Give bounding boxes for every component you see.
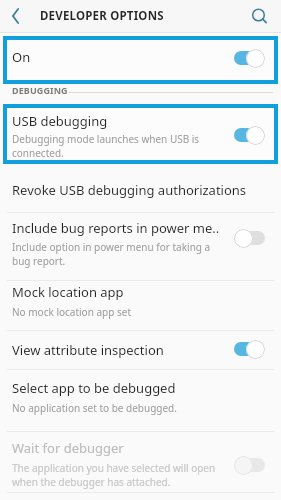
staticText: Include bug reports in power me.. — [12, 219, 220, 237]
button[interactable] — [241, 0, 281, 32]
staticText: Include option in power menu for taking … — [12, 240, 211, 254]
staticText: No mock location app set — [12, 305, 131, 319]
button[interactable]: Wait for debugger — [0, 432, 281, 492]
staticText: Wait for debugger — [12, 439, 124, 457]
button[interactable]: Revoke USB debugging authorizations — [0, 164, 281, 212]
staticText: The application you have selected will o… — [12, 461, 216, 475]
button[interactable]: Include bug reports in power me.. — [0, 213, 281, 280]
staticText: Mock location app — [12, 283, 124, 301]
staticText: View attribute inspection — [12, 341, 164, 359]
staticText: DEBUGGING — [12, 84, 68, 96]
staticText: when the debugger has attached. — [12, 475, 171, 489]
staticText: Revoke USB debugging authorizations — [12, 181, 247, 199]
staticText: connected. — [12, 146, 64, 160]
staticText: Debugging mode launches when USB is — [12, 132, 200, 146]
staticText: On — [12, 48, 31, 66]
button[interactable] — [0, 0, 32, 32]
staticText: USB debugging — [12, 112, 108, 130]
button[interactable]: Mock location app — [0, 281, 281, 330]
button[interactable]: Select app to be debugged — [0, 370, 281, 431]
button[interactable]: View attribute inspection — [0, 331, 281, 369]
staticText: bug report. — [12, 254, 66, 268]
staticText: Select app to be debugged — [12, 379, 176, 397]
button[interactable]: USB debugging — [3, 104, 278, 164]
staticText: No application set to be debugged. — [12, 401, 177, 415]
staticText: DEVELOPER OPTIONS — [40, 8, 164, 24]
button[interactable]: On — [3, 36, 278, 84]
